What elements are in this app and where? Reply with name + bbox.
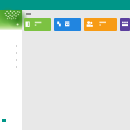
button[interactable]: Settings — [0, 116, 22, 124]
button[interactable]: People — [84, 18, 117, 31]
button[interactable]: Groups — [120, 18, 130, 31]
button[interactable]: Tools — [54, 18, 81, 31]
button[interactable]: Drawer item — [0, 49, 22, 56]
button[interactable]: Documents — [24, 18, 51, 31]
button[interactable]: Drawer item — [0, 42, 22, 49]
button[interactable]: Drawer item — [0, 63, 22, 70]
button[interactable]: Drawer item — [0, 56, 22, 63]
